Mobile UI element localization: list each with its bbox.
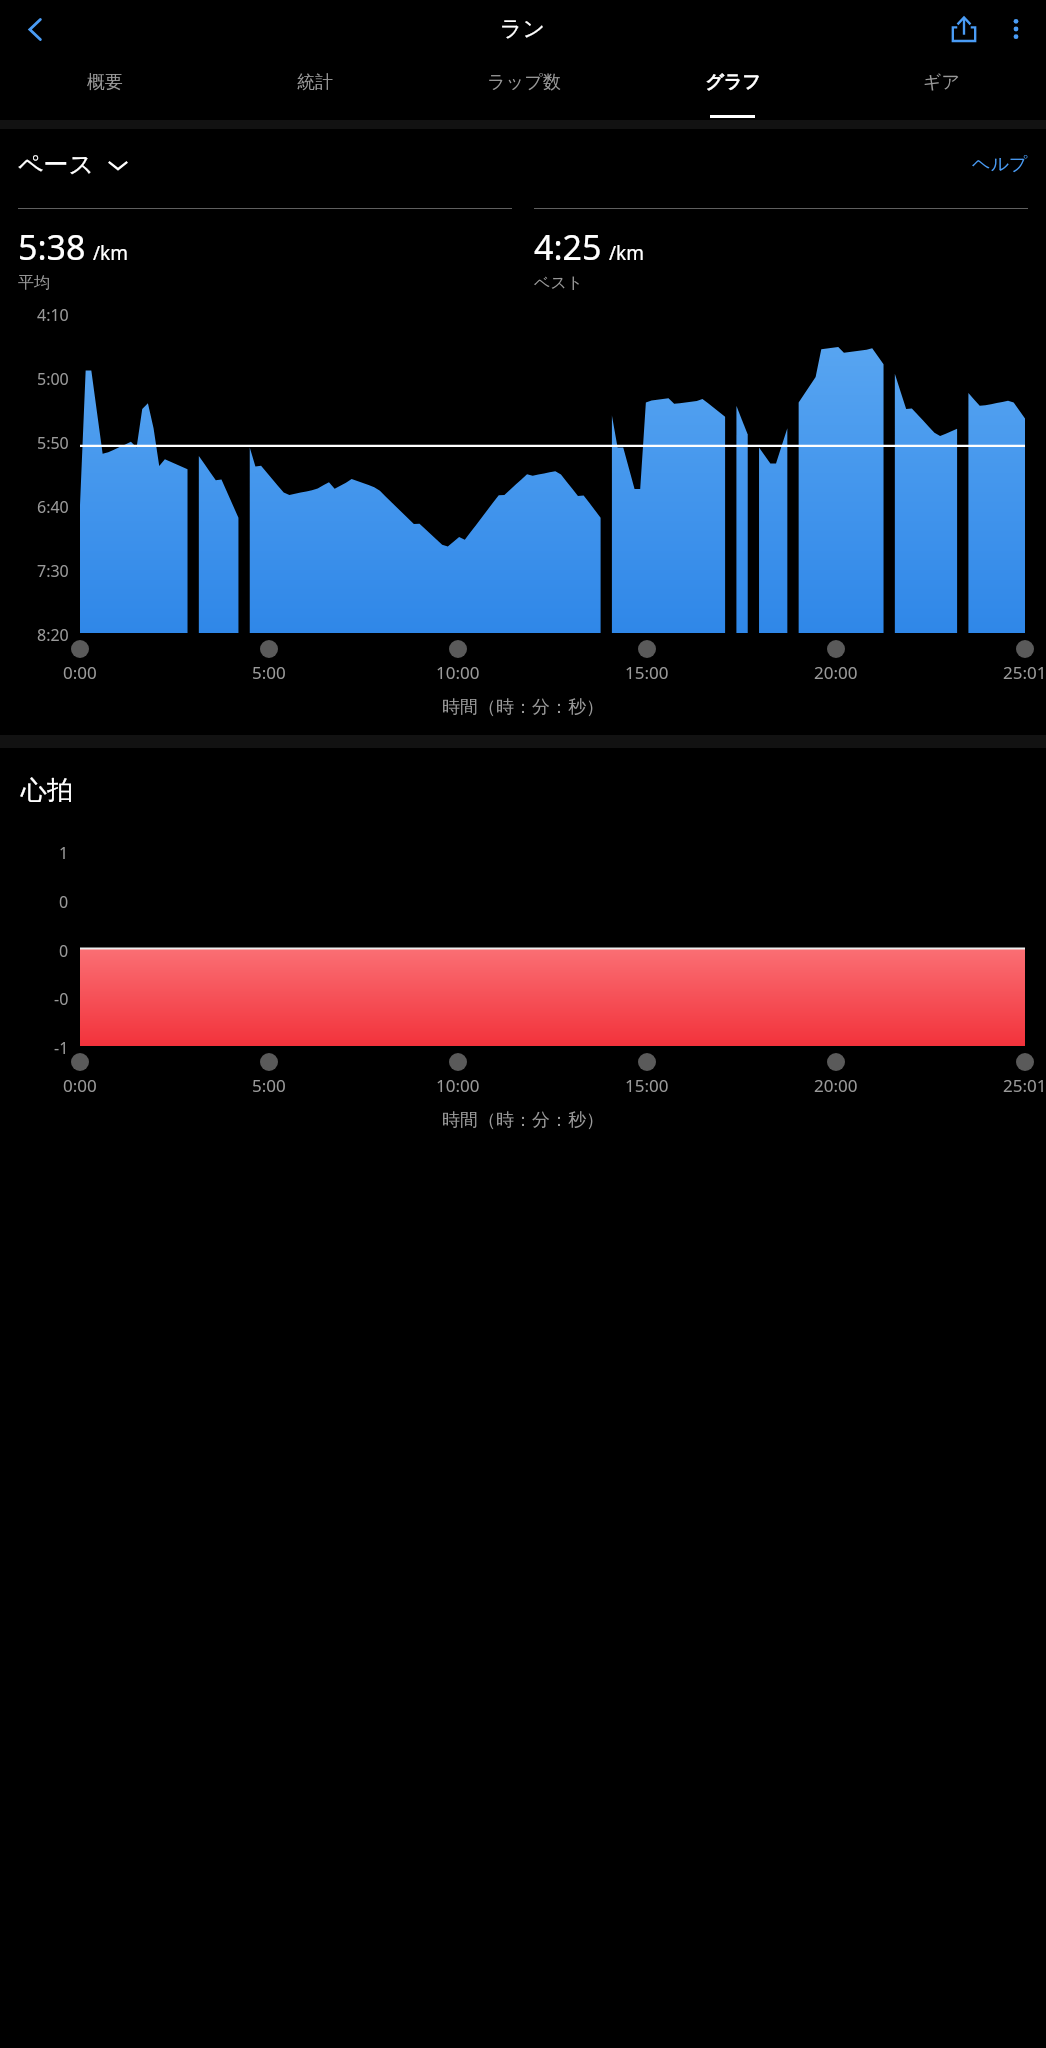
button[interactable]: Share [938,3,990,55]
staticText: /km [93,240,128,266]
staticText: 4:25 [534,224,602,270]
staticText: 25:01 [1003,1074,1046,1097]
staticText: 6:40 [37,496,69,514]
staticText: 0:00 [63,1074,97,1097]
staticText: 平均 [18,273,50,293]
button[interactable]: 概要 [0,57,210,120]
staticText: 5:00 [37,368,69,386]
staticText: -1 [54,1037,69,1055]
staticText: グラフ [705,71,761,94]
staticText: 1 [59,842,69,860]
staticText: 統計 [297,71,333,94]
staticText: 5:00 [252,1074,286,1097]
staticText: 10:00 [436,661,480,684]
button[interactable]: ラップ数 [419,57,628,120]
staticText: 10:00 [436,1074,480,1097]
staticText: ギア [923,71,960,94]
staticText: 5:38 [18,224,86,270]
staticText: -0 [54,988,69,1006]
button[interactable]: ギア [837,57,1046,120]
staticText: 15:00 [625,1074,669,1097]
staticText: 心拍 [21,774,73,807]
button[interactable]: ペース [18,149,129,180]
staticText: 5:00 [252,661,286,684]
staticText: 概要 [87,71,123,94]
staticText: ヘルプ [972,153,1028,176]
staticText: 20:00 [814,1074,858,1097]
staticText: /km [609,240,644,266]
staticText: ラン [500,15,546,43]
staticText: 5:50 [37,432,69,450]
staticText: 25:01 [1003,661,1046,684]
staticText: 4:10 [37,304,69,322]
staticText: 0 [59,940,69,958]
staticText: 7:30 [37,560,69,578]
staticText: ラップ数 [487,71,561,94]
staticText: 8:20 [37,624,69,642]
button[interactable]: More options [990,3,1042,55]
button[interactable]: Back [10,4,60,54]
staticText: 時間（時：分：秒） [0,696,1046,719]
staticText: 0 [59,891,69,909]
staticText: 時間（時：分：秒） [0,1109,1046,1132]
button[interactable]: グラフ [628,57,837,120]
button[interactable]: ヘルプ [972,153,1028,176]
staticText: ベスト [534,273,584,293]
staticText: 20:00 [814,661,858,684]
staticText: ペース [18,149,95,180]
button[interactable]: 統計 [210,57,419,120]
staticText: 0:00 [63,661,97,684]
staticText: 15:00 [625,661,669,684]
